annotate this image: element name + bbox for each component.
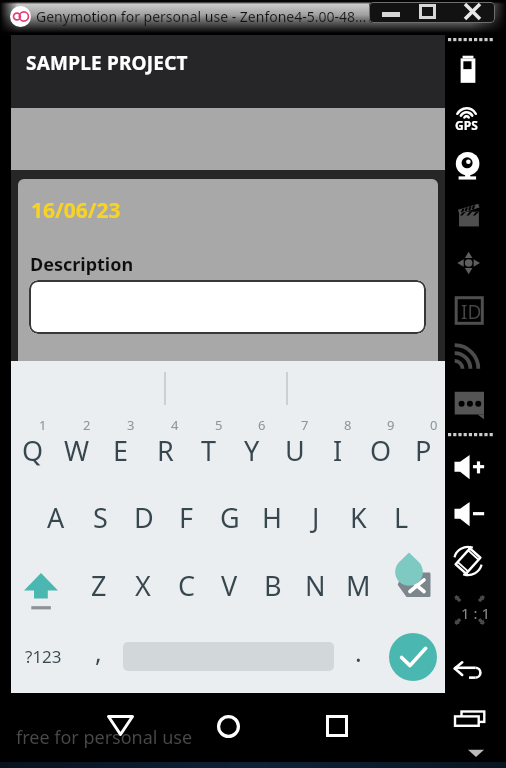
button[interactable]	[29, 280, 426, 334]
button[interactable]: Delete	[380, 551, 445, 620]
button[interactable]: S	[78, 483, 122, 551]
button[interactable]: C	[165, 551, 208, 620]
button[interactable]: Maximize	[407, 2, 447, 21]
staticText: 16/06/23	[31, 196, 121, 225]
staticText: .	[355, 635, 362, 669]
button[interactable]: Volume down	[452, 498, 484, 530]
staticText: Q	[22, 432, 44, 469]
button[interactable]: 16/06/23	[18, 179, 438, 369]
staticText: I	[333, 432, 343, 469]
staticText: 3	[127, 416, 135, 434]
button[interactable]: Close	[451, 2, 493, 21]
staticText: U	[285, 432, 305, 469]
button[interactable]: Recent apps	[451, 703, 485, 737]
button[interactable]: Messages	[452, 388, 484, 420]
staticText: A	[47, 499, 65, 536]
button[interactable]: Rotate	[452, 545, 484, 577]
staticText: W	[64, 432, 90, 469]
staticText: 5	[215, 416, 223, 434]
staticText: 8	[344, 416, 352, 434]
button[interactable]: Actual size	[452, 590, 484, 622]
staticText: T	[201, 432, 217, 469]
staticText: Description	[30, 252, 134, 277]
button[interactable]: O	[359, 415, 402, 483]
button[interactable]: E	[99, 415, 143, 483]
button[interactable]: ,	[76, 620, 120, 693]
button[interactable]: Volume up	[452, 451, 484, 483]
staticText: V	[221, 567, 238, 604]
staticText: 4	[171, 416, 179, 434]
staticText: G	[220, 499, 240, 536]
button[interactable]: SAMPLE PROJECT	[11, 35, 445, 108]
staticText: B	[264, 567, 282, 604]
button[interactable]: D	[122, 483, 165, 551]
staticText: L	[394, 499, 409, 536]
staticText: D	[134, 499, 154, 536]
staticText: 1 : 1	[461, 603, 490, 623]
staticText: ?123	[25, 645, 62, 668]
staticText: GPS	[455, 117, 478, 133]
staticText: ID	[461, 299, 482, 325]
button[interactable]: L	[380, 483, 423, 551]
button[interactable]: V	[208, 551, 251, 620]
button[interactable]: GPS	[452, 102, 484, 134]
button[interactable]: J	[294, 483, 337, 551]
button[interactable]: Shift	[11, 551, 77, 620]
button[interactable]: X	[121, 551, 165, 620]
button[interactable]: B	[251, 551, 294, 620]
button[interactable]: W	[55, 415, 99, 483]
staticText: Y	[244, 432, 260, 469]
staticText: M	[346, 567, 371, 604]
staticText: F	[179, 499, 194, 536]
button[interactable]: Camera	[452, 149, 484, 181]
button[interactable]: A	[34, 483, 78, 551]
button[interactable]: K	[337, 483, 380, 551]
button[interactable]: M	[337, 551, 380, 620]
button[interactable]: Home	[204, 702, 252, 750]
button[interactable]: Navigation	[452, 247, 484, 279]
button[interactable]: Recent apps	[313, 702, 361, 750]
staticText: C	[178, 567, 196, 604]
staticText: P	[415, 432, 432, 469]
button[interactable]: Identifiers	[452, 294, 484, 326]
button[interactable]: Z	[77, 551, 121, 620]
staticText: 6	[258, 416, 266, 434]
staticText: E	[113, 432, 129, 469]
button[interactable]: Screencast	[452, 197, 484, 229]
staticText: 1	[39, 416, 47, 434]
button[interactable]: U	[273, 415, 316, 483]
button[interactable]: T	[187, 415, 230, 483]
staticText: S	[93, 499, 108, 536]
staticText: SAMPLE PROJECT	[26, 50, 188, 76]
button[interactable]: Space	[120, 620, 336, 693]
button[interactable]: Y	[230, 415, 273, 483]
staticText: ,	[95, 635, 102, 669]
button[interactable]: R	[143, 415, 187, 483]
button[interactable]: H	[251, 483, 294, 551]
button[interactable]: P	[402, 415, 445, 483]
button[interactable]: Back	[451, 654, 485, 688]
button[interactable]: Back	[96, 701, 144, 749]
button[interactable]: Minimize	[371, 2, 411, 21]
button[interactable]: .	[336, 620, 380, 693]
staticText: X	[135, 567, 151, 604]
staticText: N	[305, 567, 326, 604]
staticText: H	[262, 499, 283, 536]
button[interactable]: N	[294, 551, 337, 620]
staticText: 9	[387, 416, 395, 434]
button[interactable]: G	[208, 483, 251, 551]
button[interactable]: Q	[11, 415, 55, 483]
button[interactable]: Genymotion	[10, 6, 31, 27]
button[interactable]: F	[165, 483, 208, 551]
button[interactable]: Network	[452, 340, 484, 372]
button[interactable]: More	[468, 745, 484, 761]
staticText: Z	[91, 567, 107, 604]
staticText: 0	[430, 416, 438, 434]
button[interactable]: Enter	[380, 620, 445, 693]
button[interactable]: Battery	[452, 52, 484, 84]
button[interactable]: ?123	[11, 620, 76, 693]
button[interactable]: I	[316, 415, 359, 483]
staticText: Genymotion for personal use - Zenfone4-5…	[36, 7, 367, 26]
staticText: 2	[83, 416, 91, 434]
